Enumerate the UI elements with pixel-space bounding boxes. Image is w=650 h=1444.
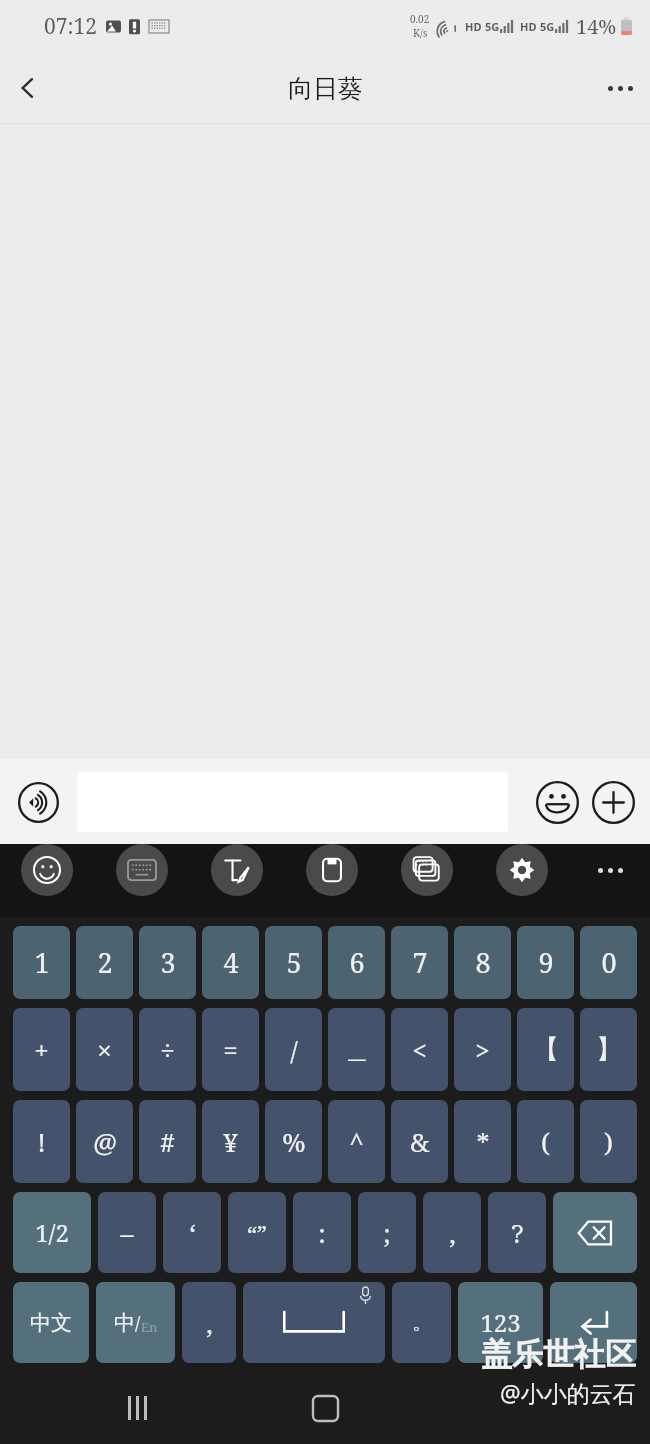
button[interactable]: ¥	[202, 1100, 259, 1183]
staticText: +	[34, 1032, 49, 1067]
button[interactable]: !	[13, 1100, 70, 1183]
staticText: 1/2	[35, 1216, 69, 1249]
button[interactable]: Chinese English toggle	[96, 1282, 175, 1363]
button[interactable]: ×	[76, 1008, 133, 1091]
button[interactable]: Recent apps	[111, 1382, 163, 1434]
button[interactable]: ＿	[328, 1008, 385, 1091]
staticText: (	[541, 1124, 550, 1159]
button[interactable]: 8	[454, 926, 511, 999]
button[interactable]: <	[391, 1008, 448, 1091]
staticText: #	[160, 1124, 175, 1159]
staticText: 9	[538, 944, 554, 981]
staticText: 1	[34, 944, 50, 981]
button[interactable]: 3	[139, 926, 196, 999]
staticText: ,	[449, 1215, 456, 1250]
button[interactable]: Space	[243, 1282, 385, 1363]
button[interactable]: 0	[580, 926, 637, 999]
button[interactable]: %	[265, 1100, 322, 1183]
button[interactable]: :	[293, 1192, 351, 1273]
button[interactable]: +	[13, 1008, 70, 1091]
button[interactable]: 中文	[13, 1282, 89, 1363]
button[interactable]: 【	[517, 1008, 574, 1091]
button[interactable]: ,	[423, 1192, 481, 1273]
staticText: 8	[475, 944, 491, 981]
button[interactable]: Home	[299, 1382, 351, 1434]
button[interactable]: ?	[488, 1192, 546, 1273]
button[interactable]: 4	[202, 926, 259, 999]
staticText: 。	[412, 1310, 432, 1335]
button[interactable]: )	[580, 1100, 637, 1183]
staticText: @	[93, 1124, 117, 1159]
button[interactable]: Handwriting	[211, 844, 263, 896]
button[interactable]: More functions	[585, 774, 641, 830]
staticText: /	[290, 1032, 298, 1067]
staticText: 6	[349, 944, 365, 981]
button[interactable]: Voice message	[10, 774, 66, 830]
button[interactable]: #	[139, 1100, 196, 1183]
button[interactable]: –	[98, 1192, 156, 1273]
staticText: 中文	[30, 1310, 72, 1336]
button[interactable]: Backspace	[553, 1192, 637, 1273]
button[interactable]: ;	[358, 1192, 416, 1273]
button[interactable]: Settings	[496, 844, 548, 896]
staticText: 中	[114, 1310, 135, 1336]
button[interactable]: 1	[13, 926, 70, 999]
staticText: 盖乐世社区	[481, 1335, 636, 1374]
button[interactable]: 123	[458, 1282, 543, 1363]
button[interactable]: 。	[392, 1282, 451, 1363]
button[interactable]: &	[391, 1100, 448, 1183]
button[interactable]: 6	[328, 926, 385, 999]
staticText: 4	[223, 944, 239, 981]
button[interactable]: 9	[517, 926, 574, 999]
staticText: >	[475, 1032, 490, 1067]
button[interactable]: ‘	[163, 1192, 221, 1273]
button[interactable]: ,	[182, 1282, 236, 1363]
button[interactable]: Switch keyboard	[401, 844, 453, 896]
staticText: !	[37, 1124, 46, 1159]
staticText: *	[476, 1124, 490, 1159]
staticText: )	[604, 1124, 613, 1159]
button[interactable]: =	[202, 1008, 259, 1091]
button[interactable]: ÷	[139, 1008, 196, 1091]
button[interactable]: More	[584, 844, 636, 896]
staticText: 5G	[540, 19, 555, 34]
staticText: 07:12	[44, 12, 97, 41]
staticText: –	[120, 1215, 134, 1250]
staticText: ¥	[223, 1124, 238, 1159]
button[interactable]: Emoji panel	[21, 844, 73, 896]
staticText: 2	[97, 944, 113, 981]
staticText: “”	[247, 1218, 267, 1248]
staticText: En	[141, 1318, 158, 1336]
button[interactable]: More options	[590, 58, 650, 118]
button[interactable]: @	[76, 1100, 133, 1183]
button[interactable]: “”	[228, 1192, 286, 1273]
button[interactable]: /	[265, 1008, 322, 1091]
button[interactable]: >	[454, 1008, 511, 1091]
button[interactable]: 1/2	[13, 1192, 91, 1273]
button[interactable]: Emoji	[529, 774, 585, 830]
button[interactable]: 7	[391, 926, 448, 999]
button[interactable]: Clipboard	[306, 844, 358, 896]
staticText: ,	[206, 1305, 213, 1340]
staticText: ;	[383, 1215, 391, 1250]
staticText: /	[135, 1311, 141, 1336]
button[interactable]: (	[517, 1100, 574, 1183]
staticText: ＿	[344, 1033, 370, 1066]
button[interactable]: 2	[76, 926, 133, 999]
button[interactable]: *	[454, 1100, 511, 1183]
staticText: ×	[97, 1032, 112, 1067]
button[interactable]: Keyboard layout	[116, 844, 168, 896]
button[interactable]: Back	[0, 60, 56, 116]
staticText: ?	[511, 1215, 524, 1250]
button[interactable]: 】	[580, 1008, 637, 1091]
button[interactable]: ^	[328, 1100, 385, 1183]
staticText: <	[412, 1032, 427, 1067]
staticText: 0.02	[410, 12, 430, 26]
button[interactable]: 5	[265, 926, 322, 999]
button[interactable]: Enter	[550, 1282, 637, 1363]
staticText: &	[410, 1124, 430, 1159]
staticText: 【	[533, 1033, 559, 1066]
staticText: 7	[412, 944, 428, 981]
staticText: @小小的云石	[500, 1377, 636, 1408]
